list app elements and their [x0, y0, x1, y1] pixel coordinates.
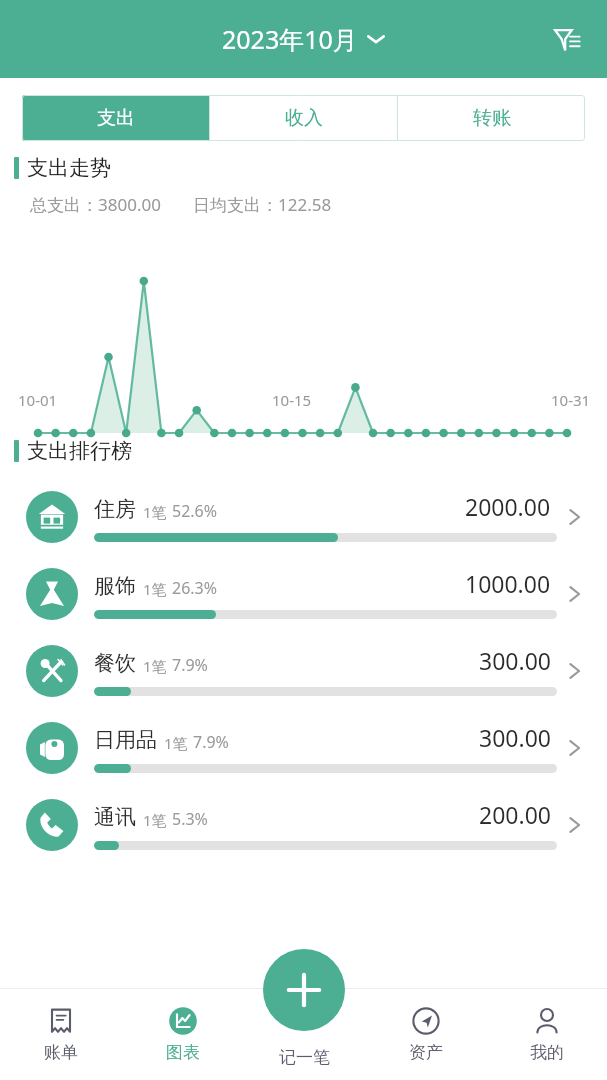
staticText: 1笔 [143, 502, 167, 522]
staticText: 1笔 [164, 733, 188, 753]
staticText: 账单 [44, 1042, 78, 1063]
button[interactable]: 住房 [0, 478, 607, 555]
button[interactable]: Add record [263, 949, 345, 1031]
staticText: 记一笔 [279, 1047, 330, 1068]
button[interactable]: 转账 [398, 95, 585, 141]
staticText: 支出 [97, 106, 135, 130]
button[interactable]: 服饰 [0, 555, 607, 632]
staticText: 日均支出：122.58 [193, 193, 332, 216]
button[interactable]: 图表 [122, 988, 244, 1080]
staticText: 通讯 [94, 804, 136, 830]
staticText: 1笔 [143, 656, 167, 676]
button[interactable]: 收入 [210, 95, 397, 141]
staticText: 1笔 [143, 810, 167, 830]
staticText: 52.6% [172, 500, 218, 522]
staticText: 我的 [530, 1042, 564, 1063]
button[interactable]: 支出 [22, 95, 209, 141]
staticText: 支出走势 [27, 155, 111, 181]
button[interactable]: 资产 [365, 988, 486, 1080]
staticText: 7.9% [172, 654, 208, 676]
button[interactable]: 我的 [486, 988, 607, 1080]
staticText: 10-15 [272, 390, 312, 410]
staticText: 26.3% [172, 577, 218, 599]
staticText: 资产 [409, 1042, 443, 1063]
staticText: 餐饮 [94, 650, 136, 676]
button[interactable]: Filter [547, 19, 587, 59]
staticText: 收入 [285, 106, 323, 130]
staticText: 5.3% [172, 808, 208, 830]
staticText: 10-31 [551, 390, 591, 410]
button[interactable]: 记一笔 [244, 988, 365, 1080]
staticText: 2000.00 [465, 491, 551, 522]
staticText: 日用品 [94, 727, 157, 753]
staticText: 300.00 [479, 722, 551, 753]
button[interactable]: 2023年10月 [214, 18, 393, 60]
button[interactable]: 通讯 [0, 786, 607, 863]
staticText: 图表 [166, 1042, 200, 1063]
staticText: 支出排行榜 [27, 438, 132, 464]
staticText: 300.00 [479, 645, 551, 676]
staticText: 服饰 [94, 573, 136, 599]
staticText: 住房 [94, 496, 136, 522]
staticText: 10-01 [18, 390, 58, 410]
button[interactable]: 餐饮 [0, 632, 607, 709]
staticText: 1000.00 [465, 568, 551, 599]
staticText: 2023年10月 [222, 22, 358, 56]
staticText: 200.00 [479, 799, 551, 830]
staticText: 转账 [473, 106, 511, 130]
button[interactable]: 日用品 [0, 709, 607, 786]
staticText: 1笔 [143, 579, 167, 599]
staticText: 7.9% [193, 731, 229, 753]
button[interactable]: 账单 [0, 988, 122, 1080]
staticText: 总支出：3800.00 [30, 193, 161, 216]
